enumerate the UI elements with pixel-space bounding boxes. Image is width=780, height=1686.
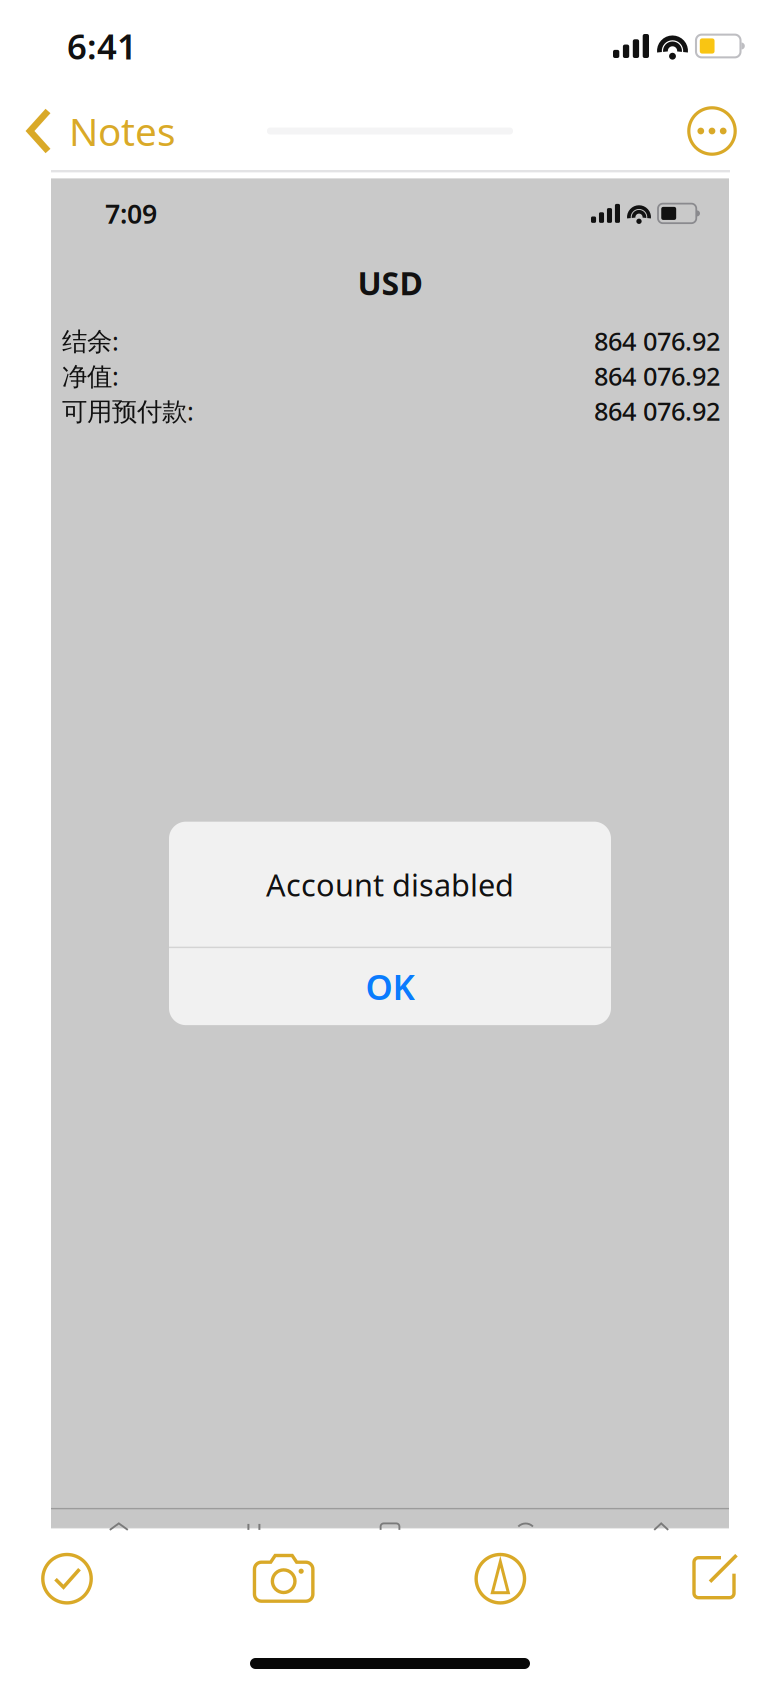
staticText: Notes: [69, 105, 176, 157]
staticText: 可用预付款:: [62, 394, 194, 428]
staticText: 864 076.92: [594, 324, 720, 358]
staticText: 净值:: [62, 359, 119, 393]
staticText: 7:09: [105, 196, 157, 231]
button[interactable]: Notes: [0, 95, 194, 167]
staticText: OK: [365, 964, 414, 1010]
button[interactable]: OK: [169, 948, 611, 1025]
button[interactable]: Camera: [224, 1543, 344, 1615]
staticText: 864 076.92: [594, 359, 720, 393]
staticText: 864 076.92: [594, 394, 720, 428]
staticText: 6:41: [67, 23, 137, 69]
staticText: Account disabled: [266, 864, 514, 905]
button[interactable]: Checklist: [7, 1543, 127, 1615]
button[interactable]: New Note: [657, 1543, 777, 1615]
staticText: USD: [357, 262, 422, 304]
button[interactable]: Markup: [440, 1543, 560, 1615]
button[interactable]: More: [667, 95, 780, 167]
staticText: 结余:: [62, 324, 119, 358]
